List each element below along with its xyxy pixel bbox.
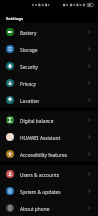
staticText: About phone — [20, 206, 50, 213]
staticText: Users & accounts — [20, 172, 59, 179]
staticText: Privacy — [20, 81, 36, 88]
staticText: Accessibility features — [20, 152, 67, 159]
staticText: Settings — [6, 16, 24, 22]
button[interactable]: Security — [0, 57, 98, 74]
staticText: System & updates — [20, 189, 61, 196]
button[interactable]: Location — [0, 91, 98, 108]
button[interactable]: Battery — [0, 23, 98, 40]
button[interactable]: System & updates — [0, 182, 98, 199]
button[interactable]: Digital balance — [0, 111, 98, 128]
button[interactable]: Users & accounts — [0, 165, 98, 182]
staticText: Battery — [20, 30, 37, 37]
button[interactable]: Storage — [0, 40, 98, 57]
button[interactable]: HUAWEI Assistant — [0, 128, 98, 145]
staticText: Storage — [20, 47, 38, 54]
staticText: Location — [20, 98, 40, 105]
button[interactable]: About phone — [0, 199, 98, 216]
staticText: Security — [20, 64, 39, 71]
staticText: Digital balance — [20, 118, 54, 125]
button[interactable]: Privacy — [0, 74, 98, 91]
button[interactable]: Accessibility features — [0, 145, 98, 162]
staticText: HUAWEI Assistant — [20, 135, 61, 142]
